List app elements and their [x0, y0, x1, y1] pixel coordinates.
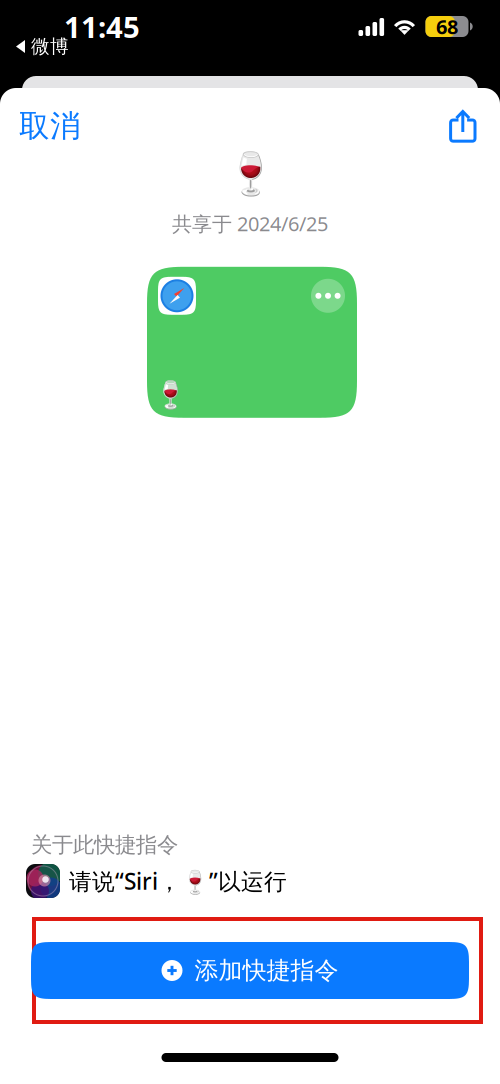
staticText: 请说“Siri，🍷”以运行	[69, 866, 287, 896]
staticText: 68	[436, 13, 458, 40]
staticText: 微博	[31, 35, 69, 58]
staticText: 🍷	[154, 379, 187, 410]
staticText: 取消	[19, 107, 81, 145]
staticText: 共享于 2024/6/25	[172, 210, 328, 237]
staticText: 🍷	[224, 150, 275, 197]
staticText: 添加快捷指令	[194, 956, 338, 985]
button[interactable]: 添加快捷指令	[31, 942, 469, 999]
staticText: 11:45	[64, 7, 140, 46]
button[interactable]: 取消	[0, 99, 95, 153]
button[interactable]: Share	[435, 103, 500, 149]
staticText: 关于此快捷指令	[31, 832, 178, 858]
